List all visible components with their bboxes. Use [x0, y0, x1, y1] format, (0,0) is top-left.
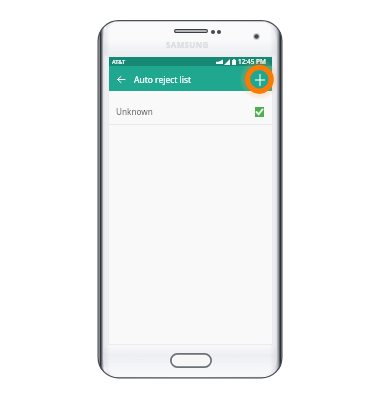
staticText: 12:45 PM	[238, 57, 266, 66]
staticText: SAMSUNG	[166, 39, 209, 50]
staticText: AT&T	[112, 58, 126, 66]
button[interactable]: Home	[170, 353, 212, 368]
button[interactable]: Navigate up	[109, 67, 133, 91]
button[interactable]: Unknown	[109, 91, 272, 124]
staticText: Auto reject list	[134, 74, 192, 86]
button[interactable]: Add	[246, 66, 272, 91]
staticText: Unknown	[116, 106, 153, 117]
